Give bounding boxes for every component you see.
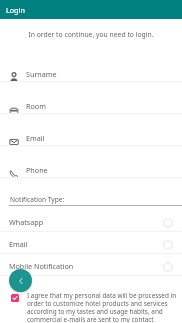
button[interactable]: Phone xyxy=(0,146,182,178)
button[interactable]: Mobile Notification xyxy=(0,254,182,276)
staticText: In order to continue, you need to login. xyxy=(0,30,182,39)
staticText: Surname xyxy=(26,69,57,79)
staticText: Notification Type: xyxy=(10,195,65,204)
button[interactable]: Surname xyxy=(0,50,182,82)
staticText: Login xyxy=(6,5,25,15)
staticText: Whatsapp xyxy=(9,217,44,227)
staticText: Phone xyxy=(26,165,48,175)
staticText: Email xyxy=(9,239,28,249)
button[interactable]: I agree that my personal data will be pr… xyxy=(11,291,180,323)
staticText: Room xyxy=(26,101,46,111)
button[interactable]: Whatsapp xyxy=(0,206,182,232)
button[interactable]: Email xyxy=(0,232,182,254)
staticText: Email xyxy=(26,133,45,143)
staticText: I agree that my personal data will be pr… xyxy=(27,291,180,323)
button[interactable]: Email xyxy=(0,114,182,146)
button[interactable]: Back xyxy=(9,269,32,292)
staticText: Mobile Notification xyxy=(9,261,74,271)
button[interactable]: Room xyxy=(0,82,182,114)
